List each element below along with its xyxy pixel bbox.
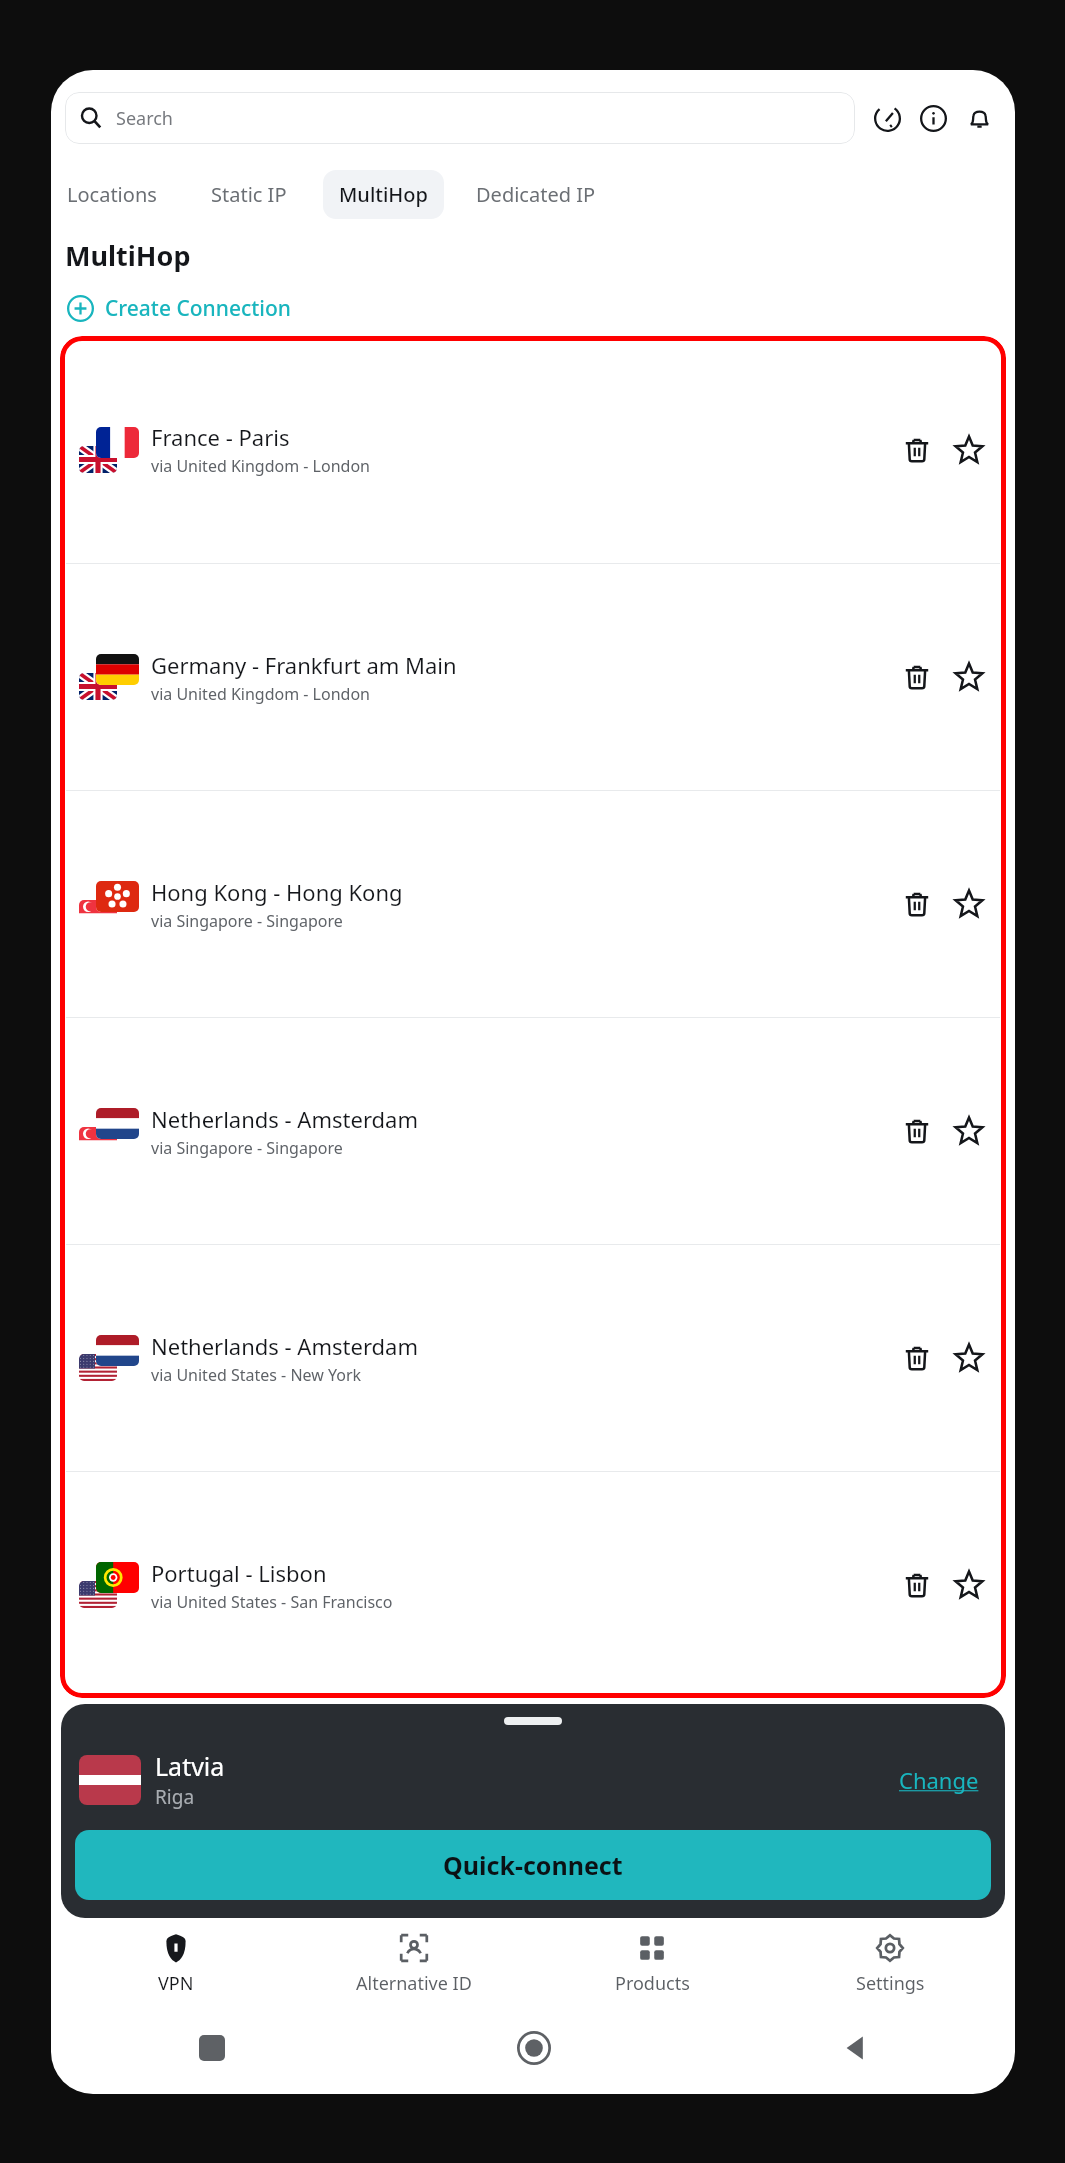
button[interactable]: Dedicated IP	[460, 170, 612, 219]
button[interactable]: Search	[65, 92, 855, 144]
staticText: Netherlands - Amsterdam	[151, 1104, 418, 1134]
staticText: Settings	[856, 1971, 925, 1996]
staticText: Alternative ID	[356, 1971, 472, 1996]
button[interactable]: France - Paris	[65, 336, 1001, 563]
staticText: Change	[899, 1765, 979, 1795]
staticText: Hong Kong - Hong Kong	[151, 877, 403, 907]
button[interactable]: Portugal - Lisbon	[65, 1472, 1001, 1698]
button[interactable]: MultiHop	[323, 170, 444, 219]
staticText: Portugal - Lisbon	[151, 1558, 327, 1588]
button[interactable]: Germany - Frankfurt am Main	[65, 564, 1001, 790]
staticText: Products	[615, 1971, 690, 1996]
staticText: via Singapore - Singapore	[151, 910, 343, 932]
staticText: via United States - New York	[151, 1364, 362, 1386]
button[interactable]: Delete Netherlands - Amsterdam	[891, 1105, 943, 1157]
other: Recent apps	[199, 2035, 225, 2061]
button[interactable]: Delete Germany - Frankfurt am Main	[891, 651, 943, 703]
staticText: Germany - Frankfurt am Main	[151, 650, 457, 680]
other: Back	[840, 2033, 870, 2063]
staticText: via United Kingdom - London	[151, 683, 370, 705]
button[interactable]: Favourite Hong Kong - Hong Kong	[943, 878, 995, 930]
button[interactable]: Static IP	[195, 170, 303, 219]
button[interactable]: VPN	[57, 1926, 295, 2002]
button[interactable]: Netherlands - Amsterdam	[65, 1245, 1001, 1471]
staticText: Search	[116, 106, 173, 131]
staticText: VPN	[158, 1971, 194, 1996]
button[interactable]: Hong Kong - Hong Kong	[65, 791, 1001, 1017]
button[interactable]: Favourite Germany - Frankfurt am Main	[943, 651, 995, 703]
staticText: France - Paris	[151, 422, 290, 452]
button[interactable]: Favourite France - Paris	[943, 424, 995, 476]
staticText: MultiHop	[339, 181, 428, 208]
staticText: Quick-connect	[443, 1848, 623, 1882]
button[interactable]: Change	[895, 1761, 983, 1799]
button[interactable]: Create Connection	[65, 290, 293, 327]
button[interactable]: Settings	[771, 1926, 1009, 2002]
button[interactable]: Quick-connect	[75, 1830, 991, 1900]
staticText: Create Connection	[105, 294, 291, 323]
button[interactable]: Locations	[51, 170, 173, 219]
staticText: MultiHop	[65, 237, 191, 274]
button[interactable]: Delete Netherlands - Amsterdam	[891, 1332, 943, 1384]
button[interactable]: Speed test	[867, 98, 907, 138]
button[interactable]: Delete Portugal - Lisbon	[891, 1559, 943, 1611]
button[interactable]: Favourite Portugal - Lisbon	[943, 1559, 995, 1611]
staticText: Dedicated IP	[476, 181, 596, 208]
staticText: via United States - San Francisco	[151, 1591, 393, 1613]
button[interactable]: Alternative ID	[295, 1926, 533, 2002]
button[interactable]: Favourite Netherlands - Amsterdam	[943, 1332, 995, 1384]
staticText: via Singapore - Singapore	[151, 1137, 343, 1159]
button[interactable]: Products	[533, 1926, 771, 2002]
staticText: Static IP	[211, 181, 287, 208]
button[interactable]: Notifications	[959, 98, 999, 138]
button[interactable]: Favourite Netherlands - Amsterdam	[943, 1105, 995, 1157]
button[interactable]: Netherlands - Amsterdam	[65, 1018, 1001, 1244]
button[interactable]: Delete Hong Kong - Hong Kong	[891, 878, 943, 930]
staticText: Netherlands - Amsterdam	[151, 1331, 418, 1361]
button[interactable]: Information	[913, 98, 953, 138]
staticText: Latvia	[155, 1749, 225, 1783]
staticText: via United Kingdom - London	[151, 455, 370, 477]
staticText: Riga	[155, 1784, 195, 1810]
other: Home	[517, 2031, 551, 2065]
staticText: Locations	[67, 181, 157, 208]
button[interactable]: Delete France - Paris	[891, 424, 943, 476]
